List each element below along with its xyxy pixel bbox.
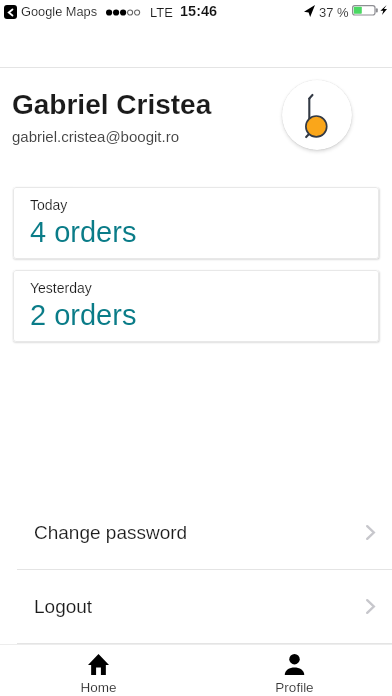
staticText: Yesterday — [30, 280, 92, 296]
button[interactable]: Yesterday — [13, 270, 379, 342]
staticText: Profile — [275, 680, 314, 695]
staticText: Today — [30, 197, 68, 213]
staticText: Google Maps — [21, 4, 98, 18]
staticText: 4 orders — [30, 216, 137, 248]
staticText: Home — [80, 680, 117, 695]
button[interactable]: Home — [0, 645, 196, 696]
staticText: gabriel.cristea@boogit.ro — [12, 128, 179, 145]
staticText: Logout — [34, 596, 93, 617]
button[interactable]: Profile photo — [282, 80, 352, 150]
staticText: Gabriel Cristea — [12, 89, 212, 120]
staticText: 15:46 — [180, 3, 218, 19]
button[interactable]: Logout — [0, 569, 392, 643]
staticText: Change password — [34, 522, 188, 543]
button[interactable]: Back to Google Maps — [4, 5, 17, 19]
button[interactable]: Today — [13, 187, 379, 259]
staticText: 2 orders — [30, 299, 137, 331]
button[interactable]: Profile — [196, 645, 392, 696]
staticText: 37 % — [319, 5, 349, 20]
button[interactable]: Change password — [0, 495, 392, 569]
staticText: LTE — [150, 5, 173, 20]
